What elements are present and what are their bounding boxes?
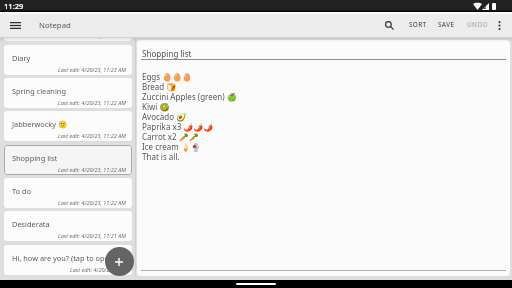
button[interactable]: Hi, how are you? (tap to open)	[4, 245, 132, 275]
staticText: Spring cleaning	[12, 86, 66, 96]
staticText: Last edit: 4/20/23, 11:22 AM	[58, 99, 126, 106]
staticText: Last edit: 4/20/23, 11:23 AM	[58, 38, 126, 39]
button[interactable]: Add note	[105, 247, 134, 276]
button[interactable]: Home	[236, 283, 276, 285]
staticText: UNDO	[467, 20, 488, 29]
staticText: Jabberwocky 🙂	[12, 119, 68, 129]
staticText: Last edit: 4/20/23, 11:2	[70, 266, 126, 273]
staticText: 11:29	[4, 1, 24, 11]
button[interactable]: Open navigation drawer	[2, 15, 28, 35]
button[interactable]: Diary	[4, 45, 132, 75]
button[interactable]: Search	[378, 16, 400, 34]
staticText: Last edit: 4/20/23, 11:22 AM	[58, 166, 126, 173]
staticText: Last edit: 4/20/23, 11:22 AM	[58, 132, 126, 139]
button[interactable]: More options	[489, 15, 510, 35]
button[interactable]: UNDO	[466, 16, 489, 33]
staticText: To do	[12, 186, 32, 196]
staticText: Eggs 🥚🥚🥚 Bread 🍞 Zuccini Apples (green) …	[142, 71, 237, 162]
staticText: Shopping list	[12, 153, 58, 163]
staticText: SAVE	[438, 20, 455, 29]
staticText: Last edit: 4/20/23, 11:22 AM	[58, 199, 126, 206]
button[interactable]: Jabberwocky 🙂	[4, 111, 132, 141]
button[interactable]: SORT	[408, 16, 428, 33]
button[interactable]: To do	[4, 178, 132, 208]
button[interactable]: Desiderata	[4, 211, 132, 241]
staticText: Diary	[12, 53, 31, 63]
staticText: Shopping list	[142, 48, 192, 59]
staticText: Hi, how are you? (tap to open)	[12, 253, 116, 263]
button[interactable]: Spring cleaning	[4, 78, 132, 108]
button[interactable]: Notes	[4, 38, 132, 41]
button[interactable]: Shopping list	[4, 145, 132, 175]
staticText: SORT	[409, 20, 427, 29]
staticText: Notepad	[39, 20, 71, 31]
staticText: Last edit: 4/20/23, 11:21 AM	[58, 232, 126, 239]
staticText: Desiderata	[12, 219, 50, 229]
staticText: Last edit: 4/20/23, 11:23 AM	[58, 66, 126, 73]
button[interactable]: SAVE	[437, 16, 456, 33]
